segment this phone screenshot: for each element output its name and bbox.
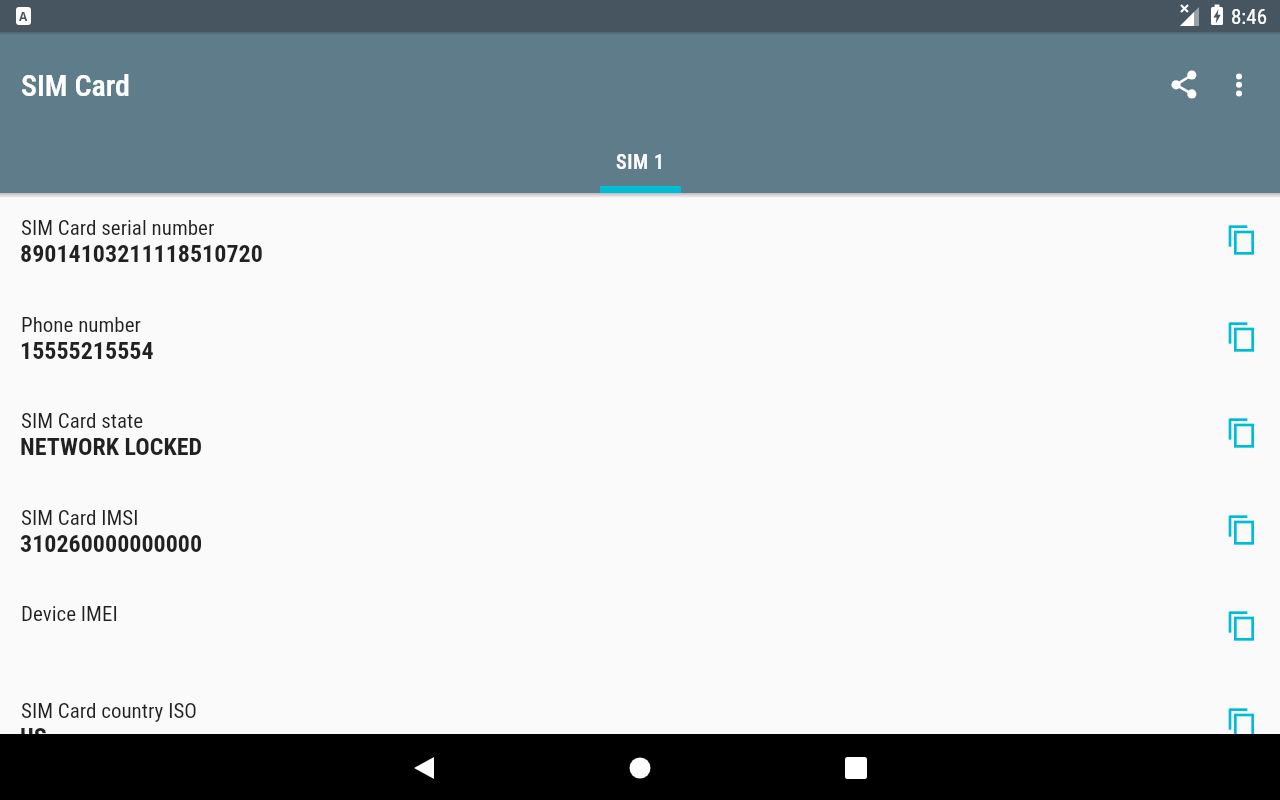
button[interactable] bbox=[1210, 691, 1274, 734]
staticText: SIM Card serial number bbox=[21, 216, 215, 241]
button[interactable] bbox=[399, 743, 447, 791]
staticText: 8:46 bbox=[1231, 5, 1268, 30]
staticText: 15555215554 bbox=[20, 337, 154, 365]
button[interactable] bbox=[616, 743, 664, 791]
button[interactable]: SIM Card country ISO bbox=[0, 676, 1280, 734]
staticText: SIM Card state bbox=[21, 409, 144, 434]
button[interactable] bbox=[1160, 62, 1208, 110]
staticText: A bbox=[19, 8, 28, 24]
button[interactable] bbox=[1210, 401, 1274, 465]
button[interactable] bbox=[1210, 594, 1274, 658]
button[interactable] bbox=[1210, 498, 1274, 562]
button[interactable] bbox=[1210, 208, 1274, 272]
button[interactable]: SIM Card serial number bbox=[0, 193, 1280, 289]
staticText: SIM Card country ISO bbox=[21, 699, 197, 724]
button[interactable] bbox=[832, 743, 880, 791]
staticText: NETWORK LOCKED bbox=[20, 433, 203, 461]
staticText: SIM 1 bbox=[616, 150, 665, 173]
button[interactable]: Device IMEI bbox=[0, 579, 1280, 675]
button[interactable]: SIM 1 bbox=[600, 129, 681, 193]
staticText: 89014103211118510720 bbox=[20, 240, 263, 268]
staticText: Phone number bbox=[21, 313, 141, 338]
staticText: Device IMEI bbox=[21, 602, 118, 627]
button[interactable]: SIM Card IMSI bbox=[0, 483, 1280, 579]
button[interactable]: SIM Card state bbox=[0, 386, 1280, 482]
staticText: SIM Card bbox=[21, 68, 130, 103]
staticText: 310260000000000 bbox=[20, 530, 203, 558]
button[interactable]: Phone number bbox=[0, 290, 1280, 386]
button[interactable] bbox=[1215, 62, 1263, 110]
staticText: SIM Card IMSI bbox=[21, 506, 139, 531]
button[interactable] bbox=[1210, 305, 1274, 369]
staticText: US bbox=[20, 723, 47, 734]
